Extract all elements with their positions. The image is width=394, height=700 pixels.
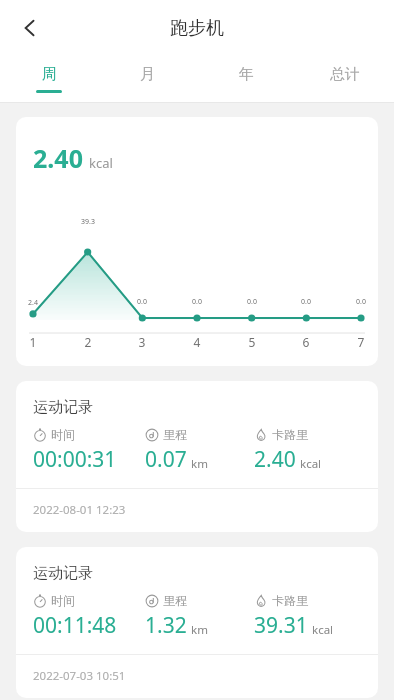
staticText: 7 — [352, 334, 370, 350]
staticText: 运动记录 — [33, 564, 93, 583]
staticText: 2.40 — [33, 141, 83, 175]
staticText: 里程 — [163, 593, 187, 608]
staticText: 月 — [140, 65, 155, 84]
staticText: 时间 — [51, 593, 75, 608]
staticText: 2022-07-03 10:51 — [33, 668, 126, 684]
staticText: 4 — [188, 334, 206, 350]
staticText: kcal — [89, 154, 113, 172]
staticText: 2.4 — [24, 298, 42, 308]
staticText: 3 — [133, 334, 151, 350]
button[interactable]: 年 — [196, 56, 295, 102]
staticText: 0.0 — [188, 297, 206, 307]
staticText: 6 — [297, 334, 315, 350]
staticText: 跑步机 — [170, 17, 224, 40]
staticText: 里程 — [163, 427, 187, 442]
staticText: kcal — [300, 456, 322, 472]
staticText: 卡路里 — [272, 427, 308, 442]
staticText: 运动记录 — [33, 398, 93, 417]
staticText: 39.31 — [254, 611, 308, 640]
button[interactable]: 运动记录 — [16, 381, 378, 532]
staticText: 0.0 — [297, 297, 315, 307]
staticText: 年 — [239, 65, 254, 84]
staticText: 00:00:31 — [33, 445, 117, 474]
staticText: km — [191, 622, 208, 638]
staticText: 39.3 — [79, 217, 97, 227]
button[interactable]: 总计 — [295, 56, 394, 102]
staticText: kcal — [312, 622, 334, 638]
staticText: 时间 — [51, 427, 75, 442]
staticText: 0.0 — [243, 297, 261, 307]
staticText: 00:11:48 — [33, 611, 117, 640]
staticText: 总计 — [330, 65, 360, 84]
staticText: 0.0 — [352, 297, 370, 307]
button[interactable]: 月 — [98, 56, 196, 102]
staticText: 0.07 — [145, 445, 187, 474]
staticText: 5 — [243, 334, 261, 350]
staticText: 2022-08-01 12:23 — [33, 502, 126, 518]
staticText: 2 — [79, 334, 97, 350]
staticText: 周 — [42, 65, 57, 84]
button[interactable]: 周 — [0, 56, 98, 102]
staticText: 0.0 — [133, 297, 151, 307]
staticText: 卡路里 — [272, 593, 308, 608]
staticText: 1.32 — [145, 611, 187, 640]
staticText: 2.40 — [254, 445, 296, 474]
staticText: km — [191, 456, 208, 472]
staticText: 1 — [24, 334, 42, 350]
button[interactable]: 运动记录 — [16, 547, 378, 698]
button[interactable]: Back — [8, 6, 52, 50]
